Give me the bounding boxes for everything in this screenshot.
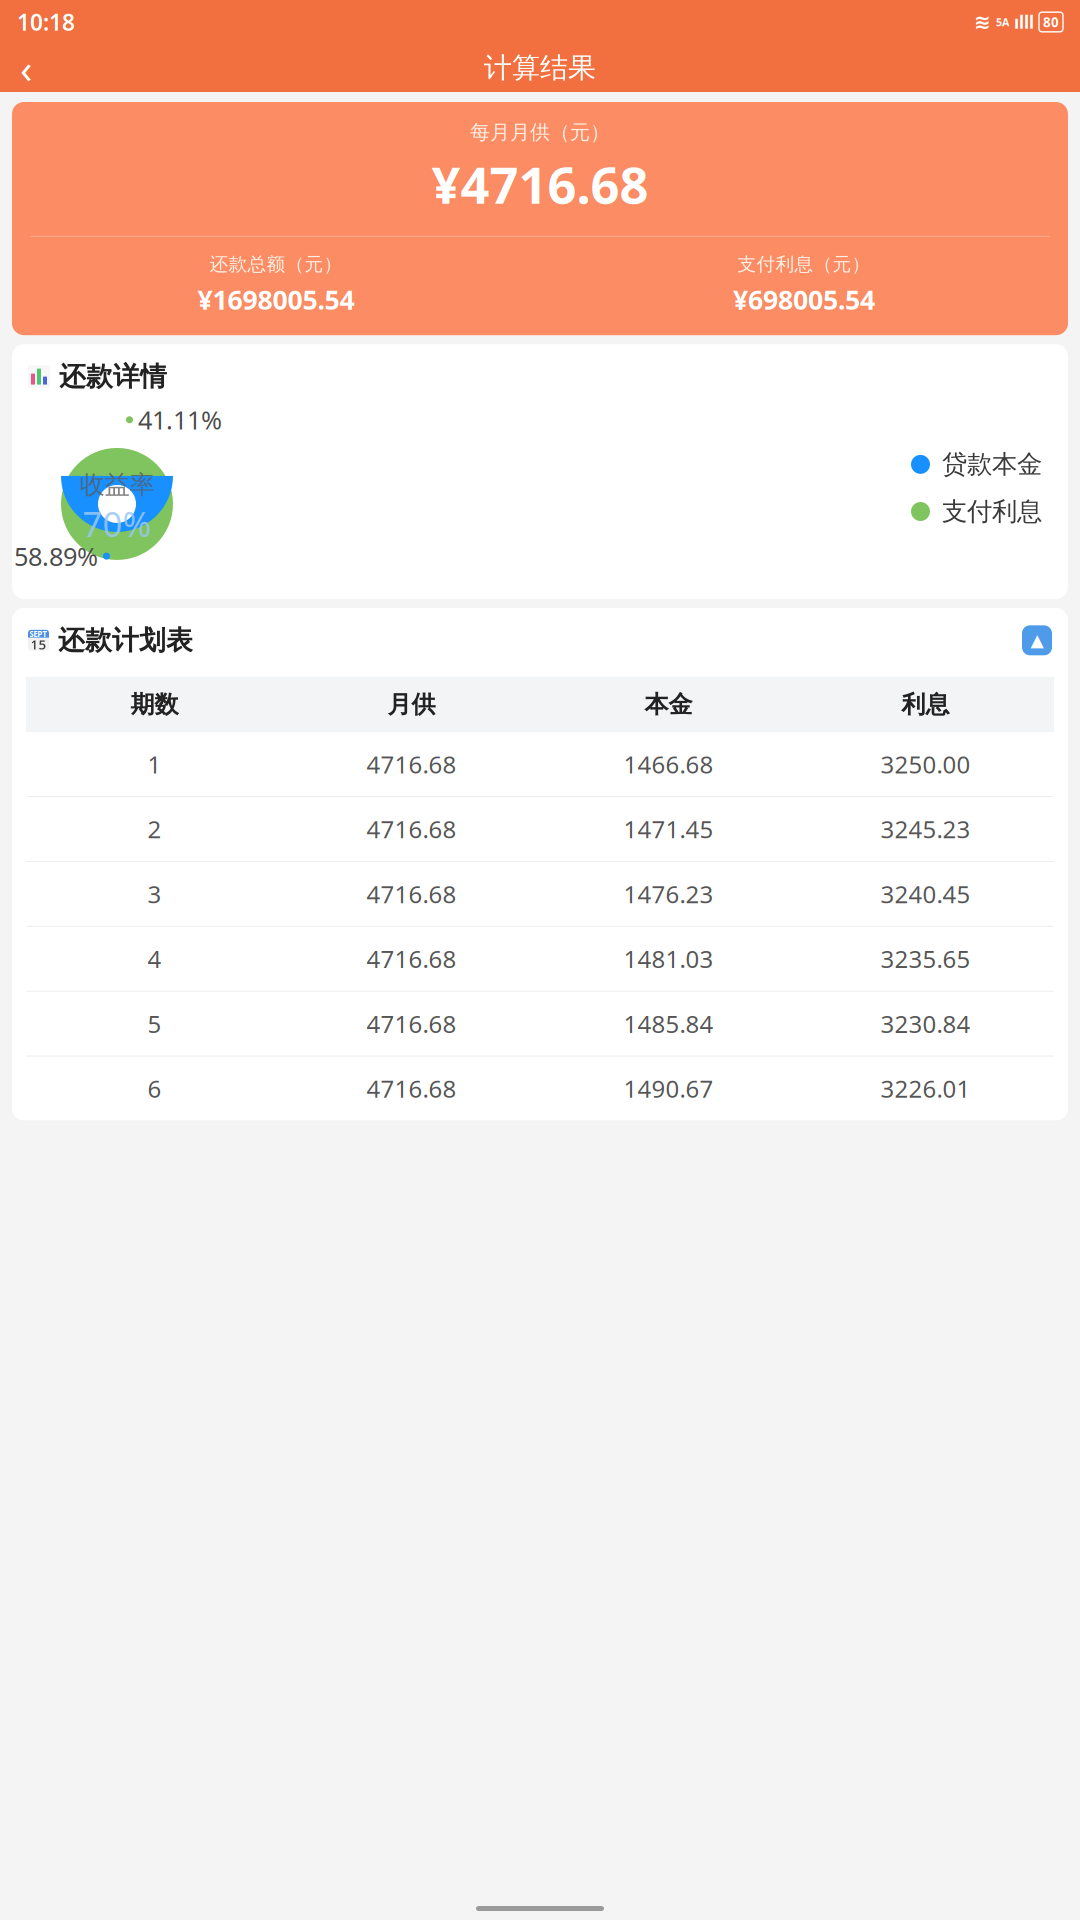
- staticText: 4716.68: [366, 943, 456, 975]
- staticText: 41.11%: [138, 403, 222, 436]
- staticText: 1476.23: [623, 878, 713, 910]
- staticText: 58.89%: [14, 539, 98, 573]
- staticText: 还款计划表: [58, 624, 193, 657]
- staticText: 4716.68: [366, 1072, 456, 1104]
- staticText: ¥1698005.54: [197, 282, 354, 317]
- staticText: 月供: [387, 690, 435, 719]
- staticText: 3230.84: [880, 1008, 970, 1040]
- staticText: ≋: [974, 11, 991, 33]
- staticText: 本金: [644, 690, 692, 719]
- staticText: 贷款本金: [942, 449, 1042, 480]
- staticText: 3226.01: [880, 1072, 970, 1104]
- staticText: 3235.65: [880, 943, 970, 975]
- button[interactable]: 收起还款计划表: [1022, 625, 1052, 655]
- staticText: 4716.68: [366, 748, 456, 780]
- staticText: 80: [1043, 13, 1059, 31]
- staticText: ▲: [1030, 630, 1043, 650]
- staticText: 3240.45: [880, 878, 970, 910]
- staticText: 还款总额（元）: [209, 253, 342, 276]
- staticText: 5A: [996, 15, 1009, 29]
- staticText: 5: [147, 1008, 161, 1040]
- staticText: 支付利息: [942, 496, 1042, 527]
- staticText: ‹: [20, 41, 32, 94]
- staticText: 利息: [901, 690, 949, 719]
- staticText: 1466.68: [623, 748, 713, 780]
- staticText: 6: [147, 1072, 161, 1104]
- staticText: 还款详情: [59, 360, 167, 393]
- staticText: 70%: [82, 500, 151, 546]
- staticText: 4716.68: [366, 813, 456, 845]
- staticText: 1471.45: [623, 813, 713, 845]
- staticText: 1485.84: [623, 1008, 713, 1040]
- staticText: 1: [147, 748, 161, 780]
- staticText: 3250.00: [880, 748, 970, 780]
- staticText: 4: [147, 943, 161, 975]
- staticText: SEPT: [29, 628, 47, 639]
- staticText: 期数: [130, 690, 178, 719]
- staticText: 收益率: [79, 469, 154, 500]
- staticText: 2: [147, 813, 161, 845]
- staticText: 15: [30, 635, 46, 653]
- staticText: 3: [147, 878, 161, 910]
- button[interactable]: 返回: [4, 46, 48, 90]
- staticText: ¥4716.68: [431, 151, 648, 218]
- staticText: 3245.23: [880, 813, 970, 845]
- staticText: ılll: [1014, 10, 1034, 33]
- staticText: 支付利息（元）: [737, 253, 870, 276]
- staticText: 计算结果: [484, 51, 596, 85]
- staticText: 1490.67: [623, 1072, 713, 1104]
- staticText: 10:18: [17, 7, 75, 37]
- staticText: ¥698005.54: [733, 282, 875, 317]
- staticText: 4716.68: [366, 1008, 456, 1040]
- staticText: 每月月供（元）: [470, 120, 610, 145]
- staticText: 1481.03: [623, 943, 713, 975]
- staticText: 4716.68: [366, 878, 456, 910]
